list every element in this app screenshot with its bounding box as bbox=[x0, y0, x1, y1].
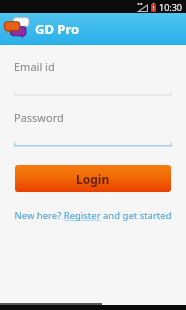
button[interactable]: Email id bbox=[0, 59, 186, 96]
staticText: Login bbox=[76, 171, 110, 187]
staticText: Password bbox=[14, 110, 64, 125]
button[interactable]: Password bbox=[0, 110, 186, 147]
button[interactable]: New here? Register and get started bbox=[0, 207, 186, 224]
staticText: Email id bbox=[14, 59, 55, 74]
button[interactable]: Login bbox=[15, 165, 171, 192]
staticText: 10:30 bbox=[159, 1, 183, 13]
staticText: GD Pro bbox=[35, 20, 80, 38]
staticText: New here? Register and get started bbox=[14, 209, 172, 222]
